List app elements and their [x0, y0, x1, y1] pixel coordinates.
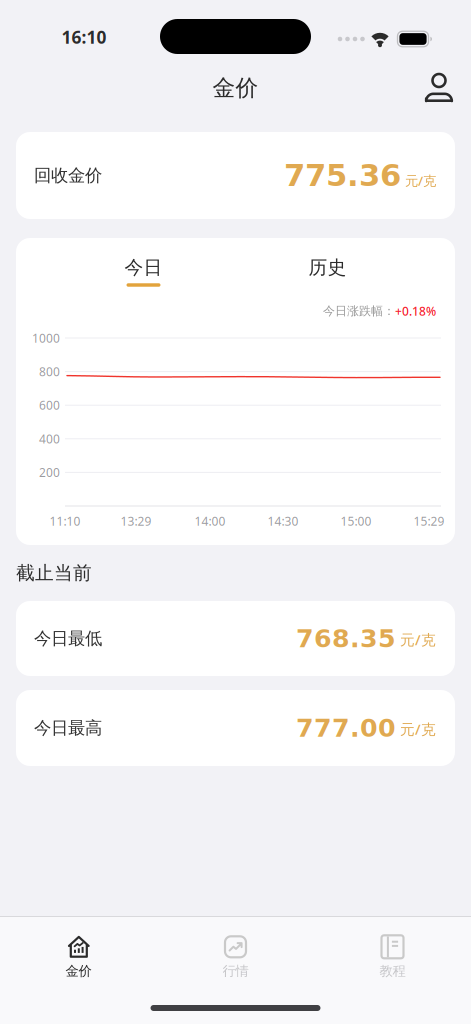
- staticText: +0.18%: [395, 303, 436, 319]
- staticText: 今日最低: [34, 628, 102, 649]
- button[interactable]: 今日最低: [16, 601, 455, 676]
- staticText: 775.36: [284, 158, 401, 193]
- staticText: 1000: [32, 330, 60, 346]
- staticText: 13:29: [120, 513, 151, 529]
- staticText: 200: [39, 464, 60, 480]
- staticText: 元/克: [400, 719, 436, 739]
- staticText: 11:10: [49, 513, 80, 529]
- button[interactable]: 个人中心: [422, 71, 456, 105]
- staticText: 768.35: [296, 624, 396, 653]
- staticText: 今日: [124, 256, 162, 279]
- staticText: 截止当前: [16, 561, 92, 584]
- staticText: 15:00: [340, 513, 371, 529]
- staticText: 14:00: [194, 513, 225, 529]
- staticText: 今日最高: [34, 717, 102, 739]
- staticText: 15:29: [413, 513, 444, 529]
- staticText: 教程: [379, 963, 405, 979]
- button[interactable]: 今日最高: [16, 690, 455, 766]
- staticText: 元/克: [405, 172, 436, 189]
- staticText: 元/克: [400, 630, 436, 649]
- staticText: 行情: [222, 963, 248, 979]
- staticText: 金价: [65, 963, 91, 979]
- staticText: 777.00: [296, 713, 396, 743]
- staticText: 14:30: [267, 513, 298, 529]
- staticText: 600: [39, 397, 60, 413]
- staticText: 金价: [212, 74, 258, 102]
- staticText: 历史: [308, 256, 346, 279]
- button[interactable]: 回收金价: [16, 132, 455, 219]
- staticText: 400: [39, 431, 60, 447]
- staticText: 800: [39, 364, 60, 379]
- button[interactable]: 行情: [157, 928, 314, 986]
- button[interactable]: 历史: [282, 250, 372, 284]
- button[interactable]: 教程: [314, 928, 471, 986]
- button[interactable]: 金价: [0, 928, 157, 986]
- button[interactable]: 今日: [98, 250, 188, 284]
- staticText: 16:10: [61, 25, 106, 48]
- staticText: 今日涨跌幅：: [323, 304, 395, 318]
- staticText: 回收金价: [34, 165, 102, 186]
